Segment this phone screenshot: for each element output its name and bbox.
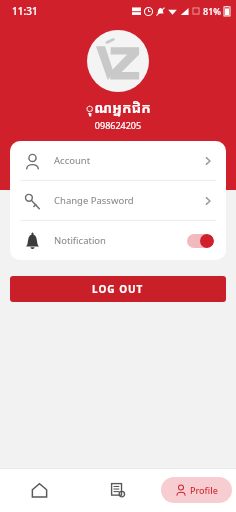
button[interactable]: Change Password	[10, 181, 226, 220]
button[interactable]: Notification toggle	[187, 234, 214, 248]
staticText: ុណអ្នកជិក	[0, 98, 236, 117]
button[interactable]: Home	[0, 468, 78, 512]
staticText: Account	[54, 154, 91, 167]
button[interactable]: LOG OUT	[10, 276, 226, 302]
button[interactable]: Account	[10, 141, 226, 180]
staticText: Notification	[54, 234, 106, 247]
staticText: Change Password	[54, 194, 134, 207]
staticText: 11:31	[12, 4, 38, 18]
staticText: 098624205	[0, 119, 236, 131]
staticText: 81%	[203, 5, 221, 17]
staticText: LOG OUT	[92, 282, 144, 296]
button[interactable]: Profile	[161, 477, 232, 503]
staticText: Profile	[190, 484, 218, 496]
button[interactable]: Reports	[78, 468, 157, 512]
button[interactable]: Notification	[10, 221, 226, 260]
